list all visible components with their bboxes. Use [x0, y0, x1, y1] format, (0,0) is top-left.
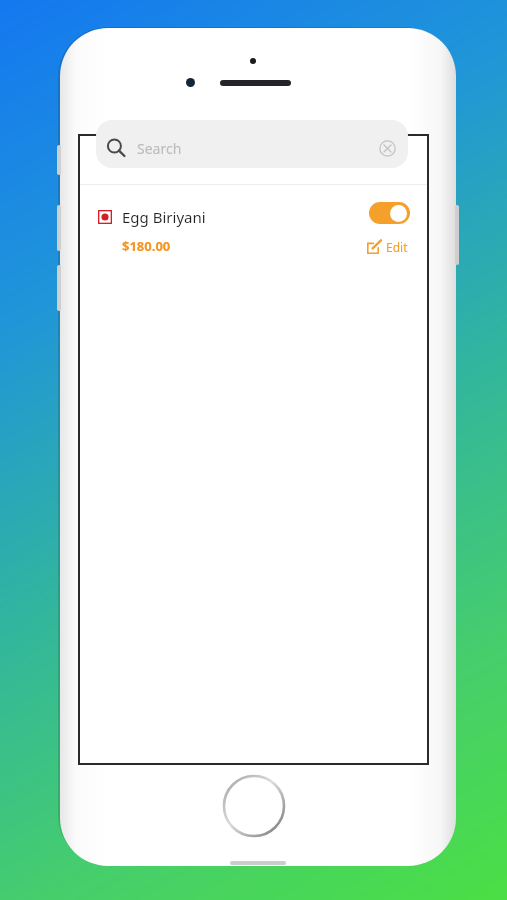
button[interactable]: Search: [96, 120, 408, 168]
staticText: $180.00: [122, 237, 171, 255]
button[interactable]: Edit: [365, 237, 410, 257]
staticText: Search: [137, 139, 182, 158]
button[interactable]: Availability toggle, on: [369, 202, 410, 224]
button[interactable]: Clear search: [379, 140, 396, 157]
button[interactable]: Home: [222, 774, 286, 838]
button[interactable]: Egg Biriyani: [80, 185, 427, 273]
staticText: Edit: [386, 239, 408, 255]
staticText: Egg Biriyani: [122, 207, 206, 227]
